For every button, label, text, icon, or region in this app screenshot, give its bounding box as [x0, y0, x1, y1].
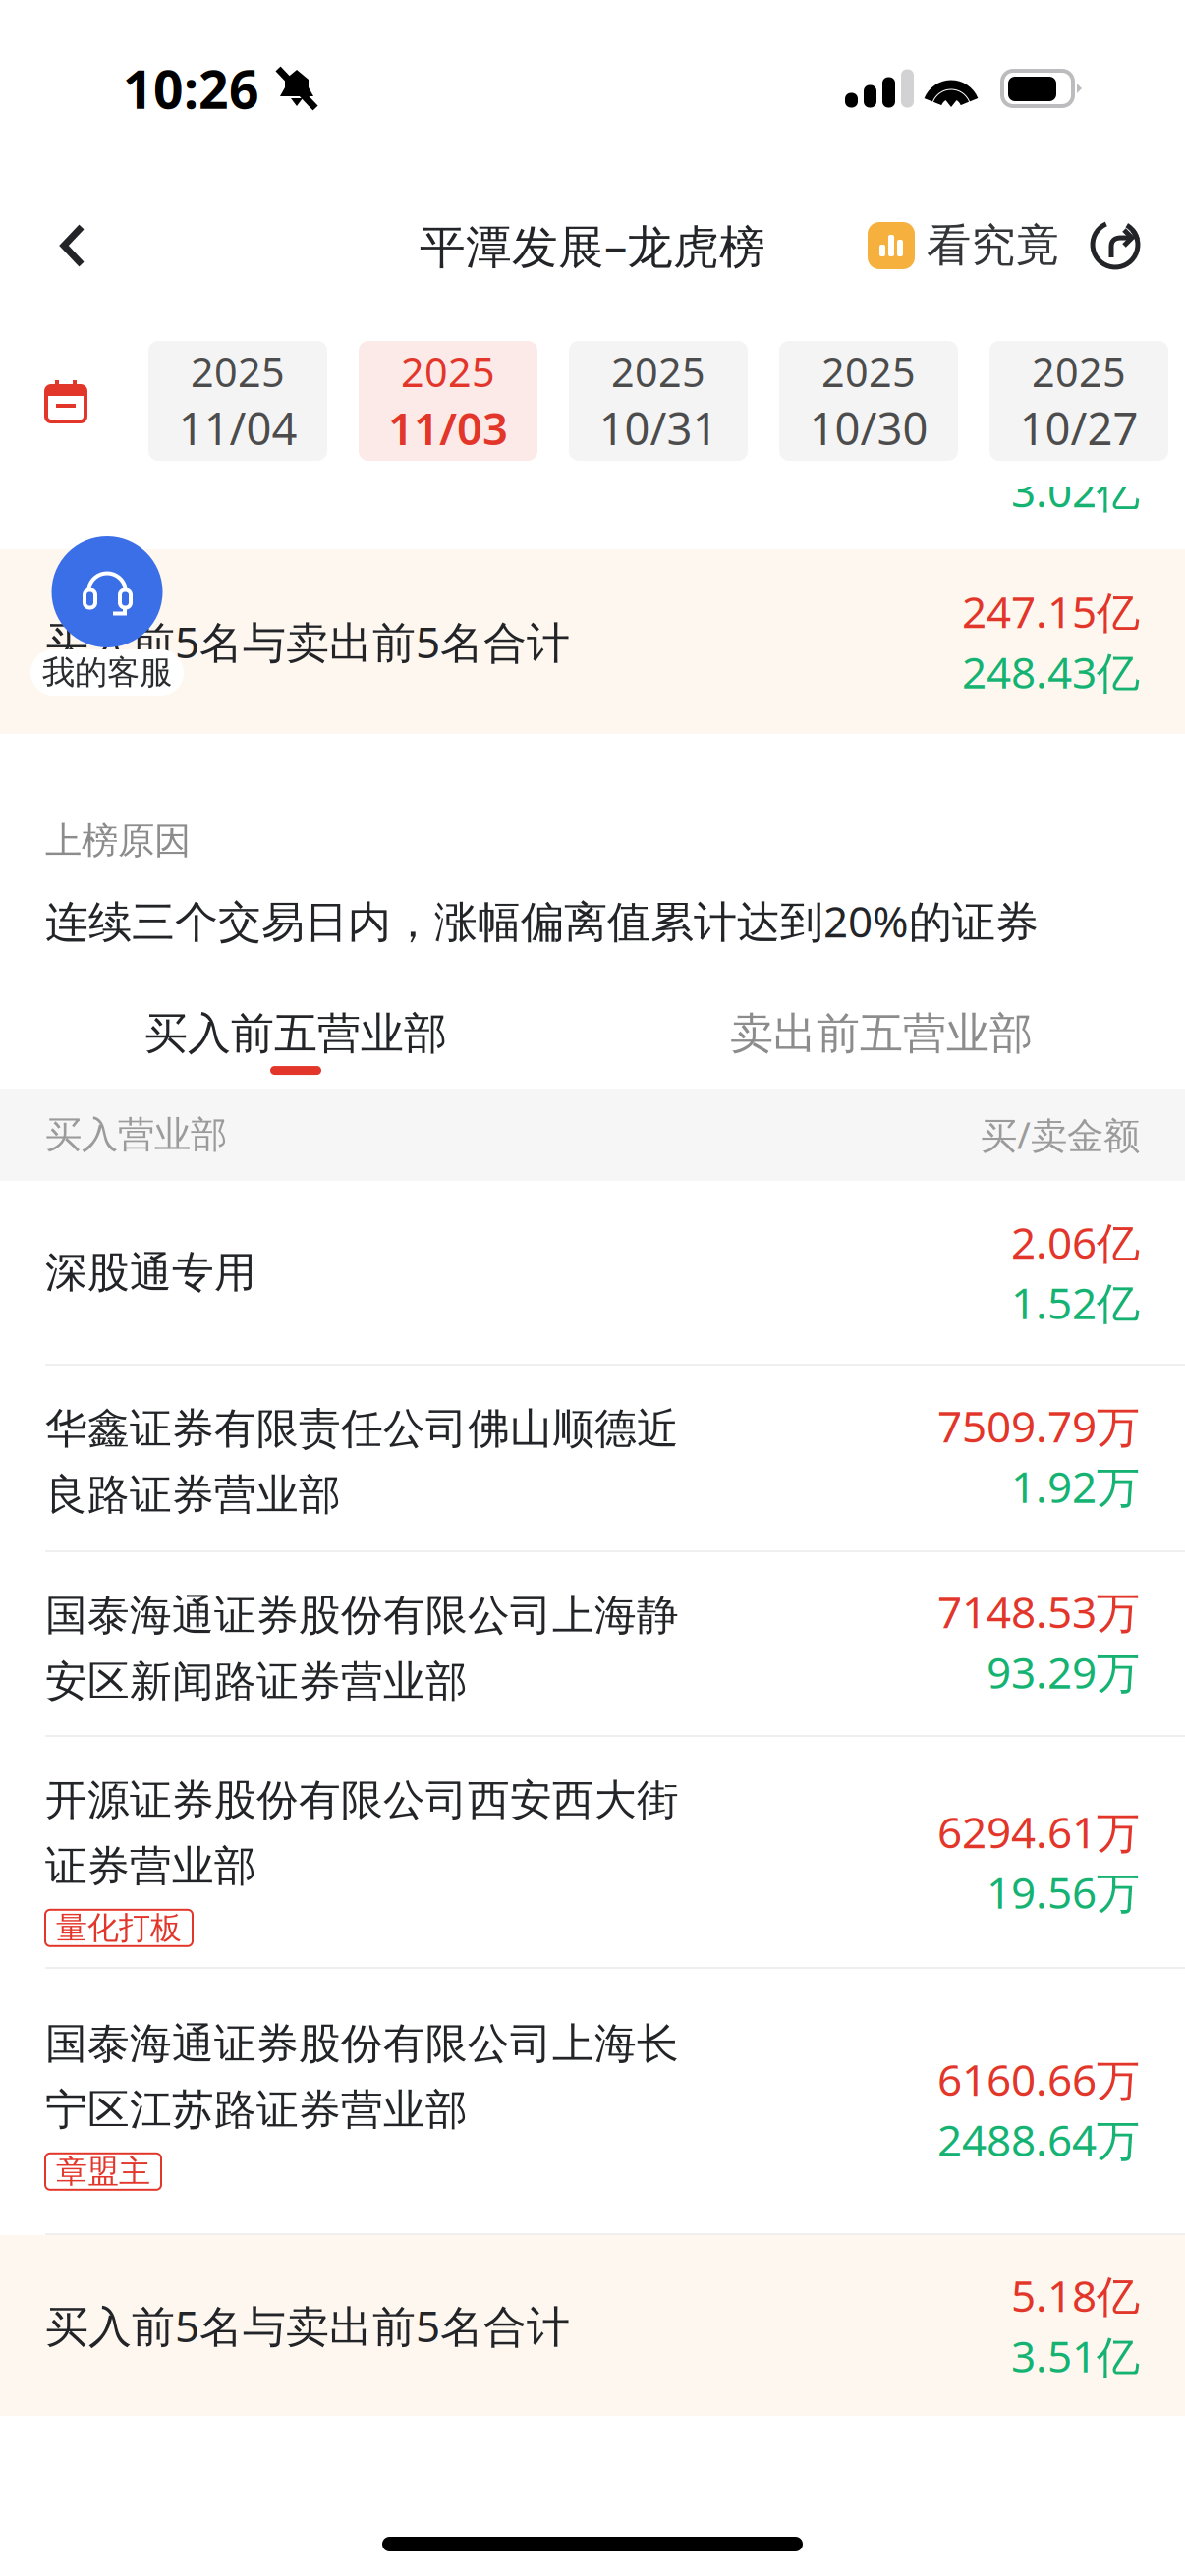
staticText: 华鑫证券有限责任公司佛山顺德近 [45, 1403, 679, 1454]
staticText: 10/27 [1019, 398, 1138, 457]
staticText: 上榜原因 [45, 818, 191, 863]
button[interactable]: 2025 [779, 341, 958, 461]
staticText: 连续三个交易日内，涨幅偏离值累计达到20%的证券 [45, 892, 1039, 949]
staticText: 11/03 [388, 398, 508, 457]
button[interactable]: 2025 [359, 341, 537, 461]
button[interactable]: 看究竟 [868, 203, 1059, 289]
staticText: 看究竟 [927, 218, 1059, 273]
staticText: 19.56万 [987, 1863, 1140, 1921]
staticText: 2.06亿 [1011, 1213, 1140, 1271]
button[interactable]: 我的客服 [30, 536, 184, 696]
staticText: 3.02亿 [1011, 462, 1140, 519]
staticText: 买入前5名与卖出前5名合计 [45, 613, 570, 670]
staticText: 2025 [821, 344, 916, 398]
staticText: 宁区江苏路证券营业部 [45, 2084, 468, 2136]
staticText: 买/卖金额 [981, 1110, 1140, 1159]
staticText: 247.15亿 [962, 583, 1140, 640]
staticText: 卖出前五营业部 [730, 1007, 1033, 1060]
button[interactable]: Back [29, 200, 116, 291]
staticText: 11/04 [178, 398, 297, 457]
staticText: 安区新闻路证券营业部 [45, 1656, 468, 1707]
button[interactable]: 2025 [148, 341, 327, 461]
staticText: 国泰海通证券股份有限公司上海静 [45, 1590, 679, 1641]
staticText: 3.51亿 [1011, 2327, 1140, 2384]
staticText: 量化打板 [56, 1909, 182, 1947]
staticText: 6294.61万 [937, 1803, 1140, 1860]
staticText: 1.52亿 [1011, 1274, 1140, 1331]
staticText: 买入前5名与卖出前5名合计 [45, 2297, 570, 2354]
staticText: 93.29万 [987, 1643, 1140, 1700]
staticText: 7509.79万 [937, 1397, 1140, 1454]
button[interactable]: Refresh [1073, 202, 1159, 289]
staticText: 10:26 [123, 54, 259, 123]
button[interactable]: 2025 [989, 341, 1168, 461]
staticText: 买入营业部 [45, 1112, 227, 1157]
staticText: 章盟主 [56, 2152, 150, 2191]
button[interactable]: 卖出前五营业部 [719, 1007, 1044, 1117]
staticText: 开源证券股份有限公司西安西大街 [45, 1774, 679, 1826]
staticText: 2025 [401, 344, 495, 398]
staticText: 我的客服 [42, 652, 172, 693]
staticText: 6160.66万 [937, 2050, 1140, 2108]
staticText: 国泰海通证券股份有限公司上海长 [45, 2018, 679, 2069]
staticText: 证券营业部 [45, 1841, 256, 1892]
staticText: 买入前五营业部 [144, 1007, 447, 1060]
staticText: 深股通专用 [45, 1247, 256, 1298]
staticText: 10/31 [599, 398, 718, 457]
staticText: 平潭发展–龙虎榜 [420, 215, 765, 276]
staticText: 2025 [1032, 344, 1126, 398]
staticText: 7148.53万 [937, 1583, 1140, 1640]
staticText: 2025 [191, 344, 285, 398]
button[interactable]: 2025 [569, 341, 748, 461]
staticText: 5.18亿 [1011, 2267, 1140, 2324]
staticText: 248.43亿 [962, 643, 1140, 700]
staticText: 2025 [611, 344, 705, 398]
staticText: 良路证券营业部 [45, 1469, 341, 1521]
button[interactable]: 买入前五营业部 [134, 1007, 458, 1117]
staticText: 10/30 [809, 398, 928, 457]
staticText: 1.92万 [1011, 1457, 1140, 1515]
staticText: 2488.64万 [937, 2111, 1140, 2168]
